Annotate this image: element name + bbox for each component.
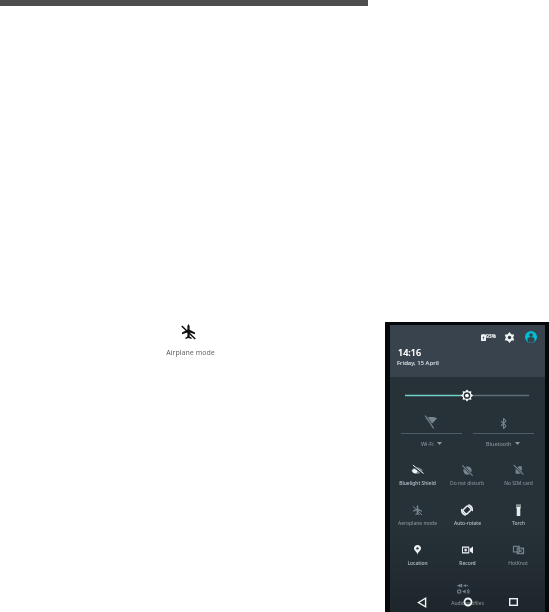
staticText: Location — [407, 560, 428, 567]
staticText: Airplane mode — [166, 348, 215, 358]
button[interactable]: Aeroplane mode — [391, 498, 443, 528]
staticText: Friday, 15 April — [397, 359, 439, 367]
staticText: Audio profiles — [451, 600, 484, 607]
staticText: 93% — [486, 333, 496, 340]
staticText: Aeroplane mode — [398, 520, 437, 527]
button[interactable]: Settings — [502, 330, 517, 345]
button[interactable]: Auto-rotate — [441, 498, 493, 528]
staticText: Record — [459, 560, 476, 567]
staticText: Wi-Fi — [421, 440, 434, 447]
staticText: Do not disturb — [450, 480, 484, 487]
staticText: Bluelight Shield — [399, 480, 436, 487]
button[interactable]: HotKnot — [492, 538, 544, 568]
button[interactable]: Home — [460, 594, 476, 610]
staticText: 14:16 — [398, 346, 422, 358]
button[interactable]: Torch — [492, 498, 544, 528]
button[interactable]: Bluetooth — [468, 413, 538, 453]
button[interactable]: User profile — [524, 330, 538, 344]
staticText: Bluetooth — [486, 440, 512, 447]
staticText: Auto-rotate — [454, 520, 481, 527]
button[interactable]: Wi-Fi — [396, 413, 466, 453]
button[interactable]: Bluelight Shield — [391, 458, 443, 488]
button[interactable]: Recent apps — [505, 594, 521, 610]
button[interactable]: Location — [391, 538, 443, 568]
button[interactable]: Back — [414, 594, 430, 610]
button[interactable]: Airplane mode — [160, 320, 221, 362]
staticText: HotKnot — [508, 560, 528, 567]
staticText: Torch — [512, 520, 525, 527]
button[interactable]: Do not disturb — [441, 458, 493, 488]
button[interactable]: Record — [441, 538, 493, 568]
button[interactable]: Audio profiles — [441, 580, 493, 612]
button[interactable]: No SIM card — [492, 458, 544, 488]
staticText: No SIM card — [504, 480, 533, 487]
